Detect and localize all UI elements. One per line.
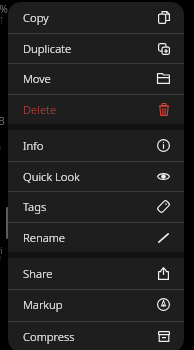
staticText: Duplicate: [23, 41, 72, 56]
button[interactable]: Markup: [8, 289, 184, 320]
other: Info: [157, 139, 170, 152]
staticText: Info: [23, 138, 44, 153]
staticText: Share: [23, 266, 53, 281]
staticText: Tags: [23, 199, 47, 214]
other: Copy: [158, 11, 170, 24]
staticText: avi: [0, 245, 3, 256]
staticText: Copy: [23, 10, 49, 25]
button[interactable]: Rename: [8, 222, 184, 253]
button[interactable]: Quick Look: [8, 161, 184, 191]
other: Move: [157, 73, 170, 84]
other: Share: [158, 267, 169, 280]
button[interactable]: Delete: [8, 94, 184, 124]
staticText: Delete: [23, 102, 57, 117]
button[interactable]: Info: [8, 130, 184, 161]
staticText: 202: [0, 253, 2, 263]
staticText: Quick Look: [23, 169, 80, 184]
staticText: Move: [23, 71, 51, 86]
other: Duplicate: [158, 43, 170, 55]
staticText: Rename: [23, 230, 66, 245]
staticText: T: [0, 15, 4, 27]
staticText: xB: [0, 114, 5, 128]
staticText: 10%: [0, 2, 8, 16]
staticText: Markup: [23, 297, 63, 312]
other: Rename: [158, 233, 169, 243]
other: Markup: [157, 298, 170, 311]
other: Tags: [157, 200, 170, 213]
other: Delete: [159, 103, 169, 116]
other: Compress: [158, 331, 170, 342]
staticText: 202: [0, 143, 2, 153]
button[interactable]: Copy: [8, 2, 184, 33]
button[interactable]: Compress: [8, 321, 184, 350]
button[interactable]: Move: [8, 63, 184, 94]
other: Quick Look: [157, 172, 170, 181]
button[interactable]: Tags: [8, 191, 184, 222]
button[interactable]: Duplicate: [8, 33, 184, 64]
button[interactable]: Share: [8, 258, 184, 289]
staticText: Compress: [23, 329, 75, 344]
